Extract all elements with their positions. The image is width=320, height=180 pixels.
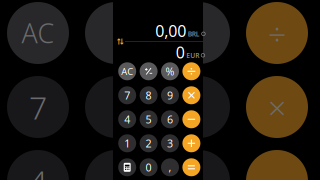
staticText: AC (21, 15, 54, 51)
button[interactable]: 0 (140, 158, 158, 176)
staticText: 8 (146, 88, 152, 102)
button[interactable]: 9 (161, 86, 179, 104)
staticText: 9 (167, 88, 173, 102)
button[interactable]: 7 (118, 86, 136, 104)
staticText: 0 (146, 160, 152, 174)
button[interactable]: Divide (182, 62, 200, 80)
staticText: 5 (146, 112, 152, 126)
staticText: , (168, 160, 171, 174)
staticText: EUR (186, 51, 199, 60)
button[interactable]: , (161, 158, 179, 176)
staticText: 0 (176, 42, 185, 63)
button[interactable]: Toggle sign (140, 62, 158, 80)
button[interactable]: Subtract (182, 110, 200, 128)
staticText: 4 (124, 112, 130, 126)
staticText: 6 (167, 112, 173, 126)
button[interactable]: Equals (182, 158, 200, 176)
button[interactable]: Add (182, 134, 200, 152)
button[interactable]: 1 (118, 134, 136, 152)
button[interactable]: Multiply (182, 86, 200, 104)
staticText: × (268, 86, 286, 128)
button[interactable]: AC (118, 62, 136, 80)
staticText: 3 (167, 136, 173, 150)
staticText: 7 (29, 86, 47, 128)
button[interactable]: 8 (140, 86, 158, 104)
button[interactable]: 3 (161, 134, 179, 152)
staticText: 7 (124, 88, 130, 102)
staticText: 2 (146, 136, 152, 150)
staticText: BRL (188, 29, 200, 38)
staticText: 1 (124, 136, 130, 150)
button[interactable]: 2 (140, 134, 158, 152)
button[interactable]: 4 (118, 110, 136, 128)
button[interactable]: Tip calculator (118, 158, 136, 176)
staticText: 0,00 (155, 20, 186, 41)
button[interactable]: 6 (161, 110, 179, 128)
staticText: ÷ (268, 12, 286, 54)
button[interactable]: % (161, 62, 179, 80)
button[interactable]: 5 (140, 110, 158, 128)
staticText: % (165, 64, 174, 78)
staticText: 4 (29, 160, 47, 180)
staticText: AC (121, 65, 133, 77)
